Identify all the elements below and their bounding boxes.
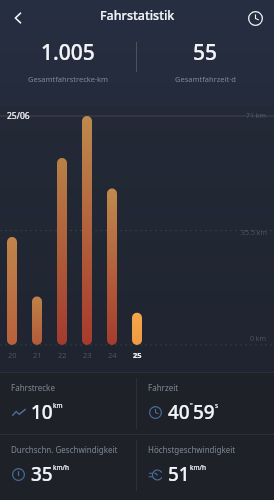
staticText: 20 — [8, 350, 17, 360]
staticText: 1.005 — [41, 38, 95, 67]
button[interactable]: Back — [2, 2, 34, 34]
button[interactable]: History — [239, 2, 271, 34]
staticText: Fahrzeit — [148, 382, 179, 393]
staticText: 22 — [58, 350, 67, 360]
staticText: 35.5 km — [241, 228, 267, 238]
staticText: km — [53, 401, 63, 410]
staticText: 40 — [168, 399, 190, 425]
staticText: 35 — [31, 461, 53, 487]
staticText: 71 km — [246, 111, 267, 121]
button[interactable]: Durchschn. Geschwindigkeit — [0, 435, 136, 496]
staticText: 55 — [193, 38, 218, 67]
staticText: km/h — [53, 463, 69, 472]
button[interactable]: Fahrzeit — [137, 373, 274, 434]
staticText: " — [190, 401, 193, 410]
staticText: 59 — [193, 399, 215, 425]
button[interactable]: Fahrstrecke — [0, 373, 136, 434]
staticText: km/h — [190, 463, 206, 472]
staticText: 23 — [83, 350, 92, 360]
staticText: 25/06 — [7, 110, 30, 122]
staticText: Fahrstrecke — [11, 382, 55, 393]
staticText: 0 km — [250, 334, 267, 344]
staticText: s — [215, 401, 219, 410]
button[interactable]: Höchstgeschwindigkeit — [137, 435, 274, 496]
staticText: 10 — [31, 399, 53, 425]
staticText: Durchschn. Geschwindigkeit — [11, 444, 118, 455]
staticText: Gesamtfahrstrecke·km — [28, 74, 109, 84]
staticText: Fahrstatistik — [100, 7, 175, 24]
staticText: 21 — [33, 350, 42, 360]
staticText: 51 — [168, 461, 190, 487]
staticText: 25 — [133, 350, 142, 360]
staticText: Gesamtfahrzeit·d — [175, 74, 236, 84]
staticText: Höchstgeschwindigkeit — [148, 444, 236, 455]
staticText: 24 — [108, 350, 117, 360]
